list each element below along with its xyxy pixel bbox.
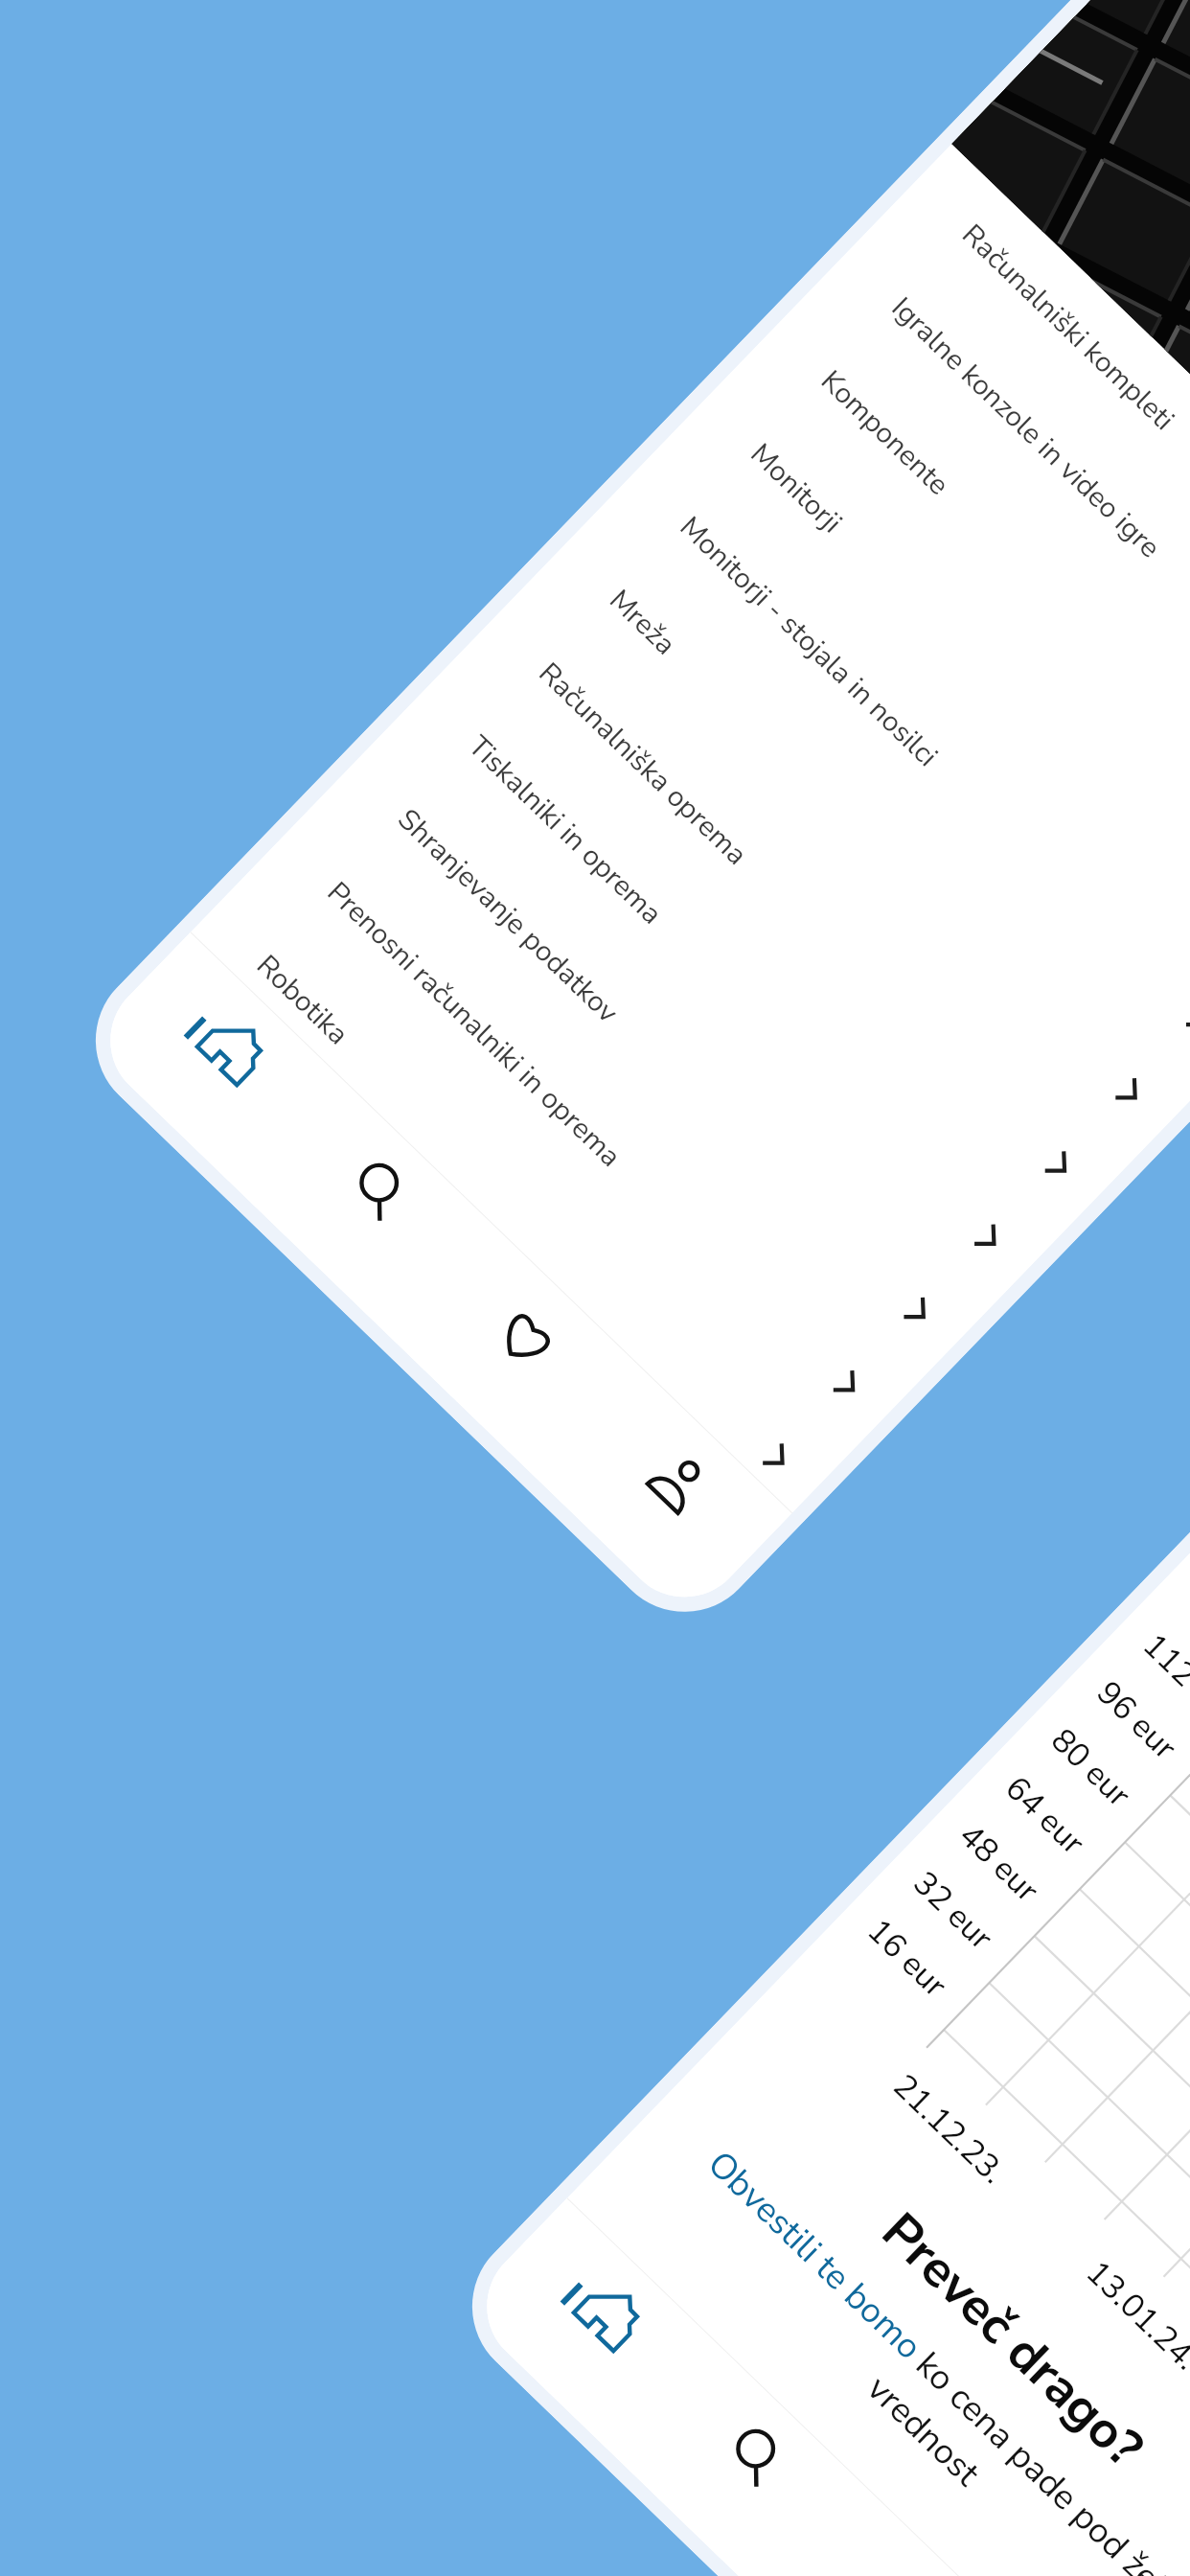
button[interactable]: Komponente	[740, 290, 1190, 944]
staticText: 13.01.24.	[1076, 2251, 1190, 2380]
button[interactable]: Home	[84, 932, 341, 1188]
button[interactable]: Favourites	[385, 1223, 642, 1478]
staticText: Komponente	[812, 362, 958, 505]
staticText: Monitorji	[742, 435, 851, 542]
staticText: Računalniška oprema	[530, 654, 756, 874]
staticText: 80 eur	[1041, 1719, 1140, 1817]
button[interactable]: Računalniški kompleti	[881, 144, 1190, 798]
button[interactable]: Robotika	[176, 874, 848, 1529]
button[interactable]: Search	[612, 2344, 868, 2576]
staticText: Računalniški kompleti	[953, 216, 1183, 440]
staticText: Prenosni računalniki in oprema	[318, 873, 629, 1176]
staticText: Obvestili te bomo ko cena pade pod želen…	[638, 2117, 1190, 2576]
staticText: Shranjevanje podatkov	[389, 800, 627, 1032]
staticText: Preveč drago?	[866, 2197, 1158, 2482]
staticText: Tiskalniki in oprema	[459, 727, 671, 933]
staticText: 96 eur	[1087, 1672, 1186, 1769]
button[interactable]: Profile	[536, 1368, 792, 1623]
staticText: 112 eur	[1133, 1624, 1190, 1736]
staticText: 32 eur	[904, 1862, 1002, 1960]
button[interactable]: Monitorji - stojala in nosilci	[599, 436, 1190, 1090]
staticText: 16 eur	[858, 1909, 957, 2007]
button[interactable]: Igralne konzole in video igre	[810, 217, 1190, 871]
button[interactable]: Search	[235, 1078, 491, 1333]
staticText: Mreža	[601, 581, 684, 664]
button[interactable]: Mreža	[528, 509, 1190, 1163]
button[interactable]: Tiskalniki in oprema	[387, 655, 1059, 1309]
staticText: Robotika	[248, 946, 357, 1054]
staticText: 48 eur	[950, 1814, 1048, 1912]
button[interactable]: Računalniška oprema	[458, 582, 1130, 1236]
button[interactable]: Home	[461, 2198, 718, 2454]
staticText: 64 eur	[995, 1767, 1094, 1864]
staticText: Monitorji - stojala in nosilci	[671, 508, 946, 776]
staticText: Igralne konzole in video igre	[883, 289, 1169, 567]
button[interactable]: Prenosni računalniki in oprema	[246, 801, 918, 1456]
button[interactable]: Shranjevanje podatkov	[317, 728, 989, 1383]
staticText: 21.12.23.	[883, 2065, 1015, 2194]
button[interactable]: Monitorji	[669, 363, 1190, 1017]
